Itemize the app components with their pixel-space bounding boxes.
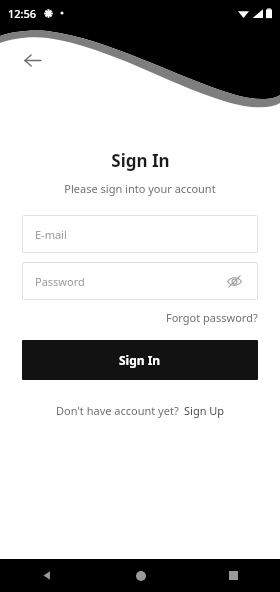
staticText: Sign In bbox=[111, 149, 170, 172]
button[interactable]: Recent apps bbox=[187, 559, 280, 592]
staticText: Forgot password? bbox=[166, 310, 258, 325]
button[interactable]: Home bbox=[94, 559, 187, 592]
staticText: E-mail bbox=[35, 227, 67, 242]
staticText: Don't have account yet? bbox=[56, 403, 179, 418]
staticText: Sign Up bbox=[184, 403, 225, 418]
button[interactable]: Password bbox=[22, 262, 258, 300]
staticText: Please sign into your account bbox=[64, 181, 216, 196]
button[interactable]: Show password bbox=[223, 270, 245, 292]
button[interactable]: E-mail bbox=[22, 215, 258, 253]
staticText: Sign In bbox=[119, 352, 161, 368]
button[interactable]: Sign In bbox=[22, 340, 258, 380]
staticText: Password bbox=[35, 274, 85, 289]
button[interactable]: Back bbox=[0, 559, 94, 592]
button[interactable]: Forgot password? bbox=[166, 308, 258, 327]
button[interactable]: Sign Up bbox=[184, 401, 225, 420]
staticText: 12:56 bbox=[8, 6, 37, 21]
button[interactable]: Back bbox=[18, 46, 46, 74]
